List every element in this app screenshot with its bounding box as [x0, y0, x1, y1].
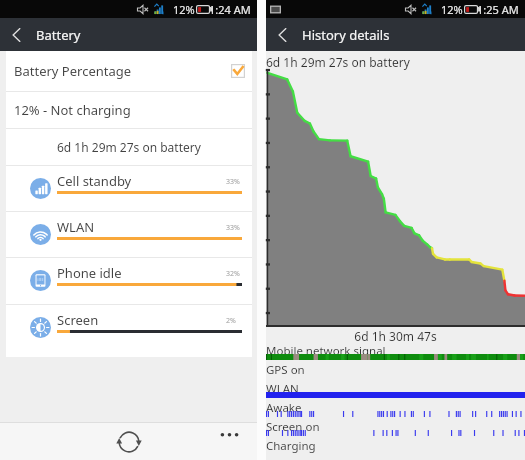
staticText: 12%: [441, 2, 463, 17]
button[interactable]: WLAN: [6, 212, 252, 257]
staticText: 33%: [226, 223, 240, 233]
staticText: Screen: [57, 311, 99, 329]
button[interactable]: Back: [266, 18, 299, 51]
button[interactable]: Phone idle: [6, 258, 252, 304]
button[interactable]: Back: [0, 18, 33, 51]
staticText: 2%: [226, 316, 236, 326]
button[interactable]: Cell standby: [6, 166, 252, 211]
staticText: 32%: [226, 269, 240, 279]
staticText: Awake: [266, 400, 302, 416]
staticText: 12%: [173, 2, 195, 17]
staticText: 33%: [226, 177, 240, 187]
staticText: 1:24 AM: [209, 2, 251, 17]
button[interactable]: Battery Percentage: [6, 51, 252, 91]
staticText: History details: [302, 26, 390, 44]
staticText: 6d 1h 29m 27s on battery: [266, 54, 410, 70]
staticText: GPS on: [266, 362, 305, 378]
staticText: WLAN: [57, 218, 95, 236]
staticText: WLAN: [266, 381, 299, 397]
staticText: Phone idle: [57, 264, 122, 282]
staticText: Mobile network signal: [266, 343, 386, 359]
button[interactable]: Refresh: [112, 425, 146, 459]
staticText: Cell standby: [57, 172, 132, 190]
staticText: Battery Percentage: [14, 62, 132, 80]
staticText: 1:25 AM: [477, 2, 519, 17]
staticText: 6d 1h 30m 47s: [266, 328, 525, 344]
staticText: Charging: [266, 438, 316, 454]
staticText: Battery: [36, 26, 81, 44]
button[interactable]: Screen: [6, 305, 252, 350]
staticText: Screen on: [266, 419, 320, 435]
button[interactable]: More options: [212, 423, 246, 457]
button[interactable]: 12% - Not charging: [6, 92, 252, 128]
staticText: 6d 1h 29m 27s on battery: [57, 139, 201, 155]
staticText: 12% - Not charging: [14, 101, 131, 119]
button[interactable]: 6d 1h 29m 27s on battery: [6, 129, 252, 165]
